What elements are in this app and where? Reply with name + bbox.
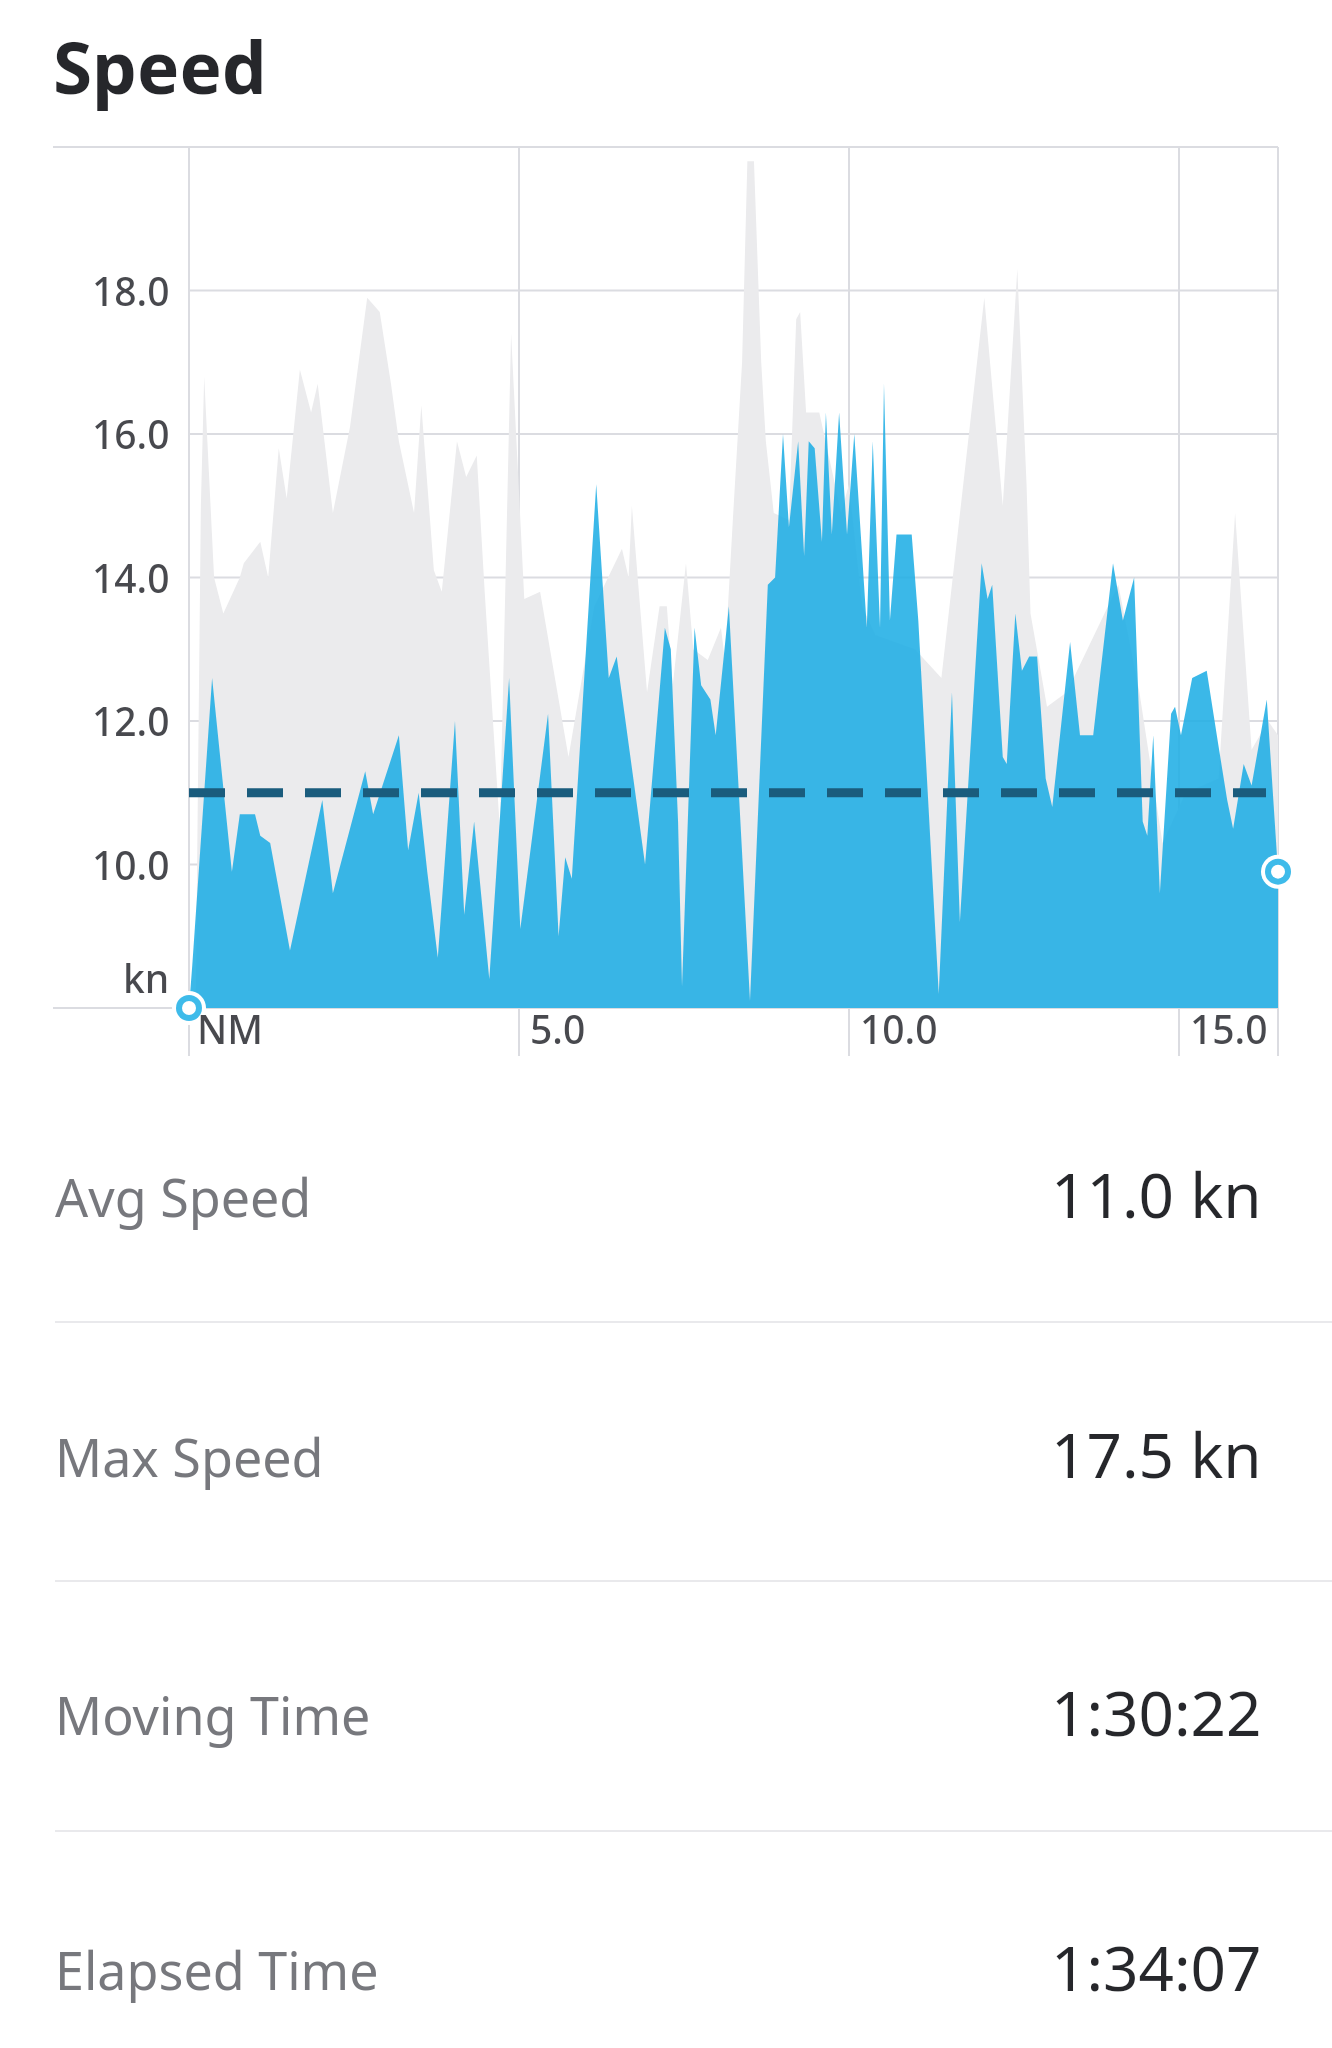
staticText: 10.0 bbox=[92, 838, 170, 891]
staticText: Moving Time bbox=[55, 1679, 371, 1750]
staticText: Elapsed Time bbox=[55, 1934, 379, 2005]
button[interactable] bbox=[0, 1889, 1332, 2048]
staticText: 1:30:22 bbox=[1051, 1670, 1262, 1754]
staticText: 17.5 kn bbox=[1051, 1412, 1262, 1496]
staticText: 1:34:07 bbox=[1051, 1925, 1262, 2009]
staticText: 15.0 bbox=[1190, 1002, 1268, 1055]
button[interactable] bbox=[0, 1116, 1332, 1276]
staticText: 12.0 bbox=[92, 694, 170, 747]
staticText: 16.0 bbox=[92, 407, 170, 460]
staticText: Speed bbox=[53, 18, 267, 115]
button[interactable] bbox=[0, 1634, 1332, 1794]
staticText: 18.0 bbox=[92, 264, 170, 317]
staticText: Avg Speed bbox=[55, 1161, 312, 1232]
staticText: Max Speed bbox=[55, 1421, 324, 1492]
staticText: NM bbox=[197, 1002, 264, 1055]
staticText: 11.0 kn bbox=[1051, 1152, 1262, 1236]
staticText: 14.0 bbox=[92, 551, 170, 604]
button[interactable] bbox=[0, 1376, 1332, 1536]
staticText: 5.0 bbox=[530, 1002, 586, 1055]
staticText: kn bbox=[123, 951, 170, 1004]
staticText: 10.0 bbox=[860, 1002, 938, 1055]
